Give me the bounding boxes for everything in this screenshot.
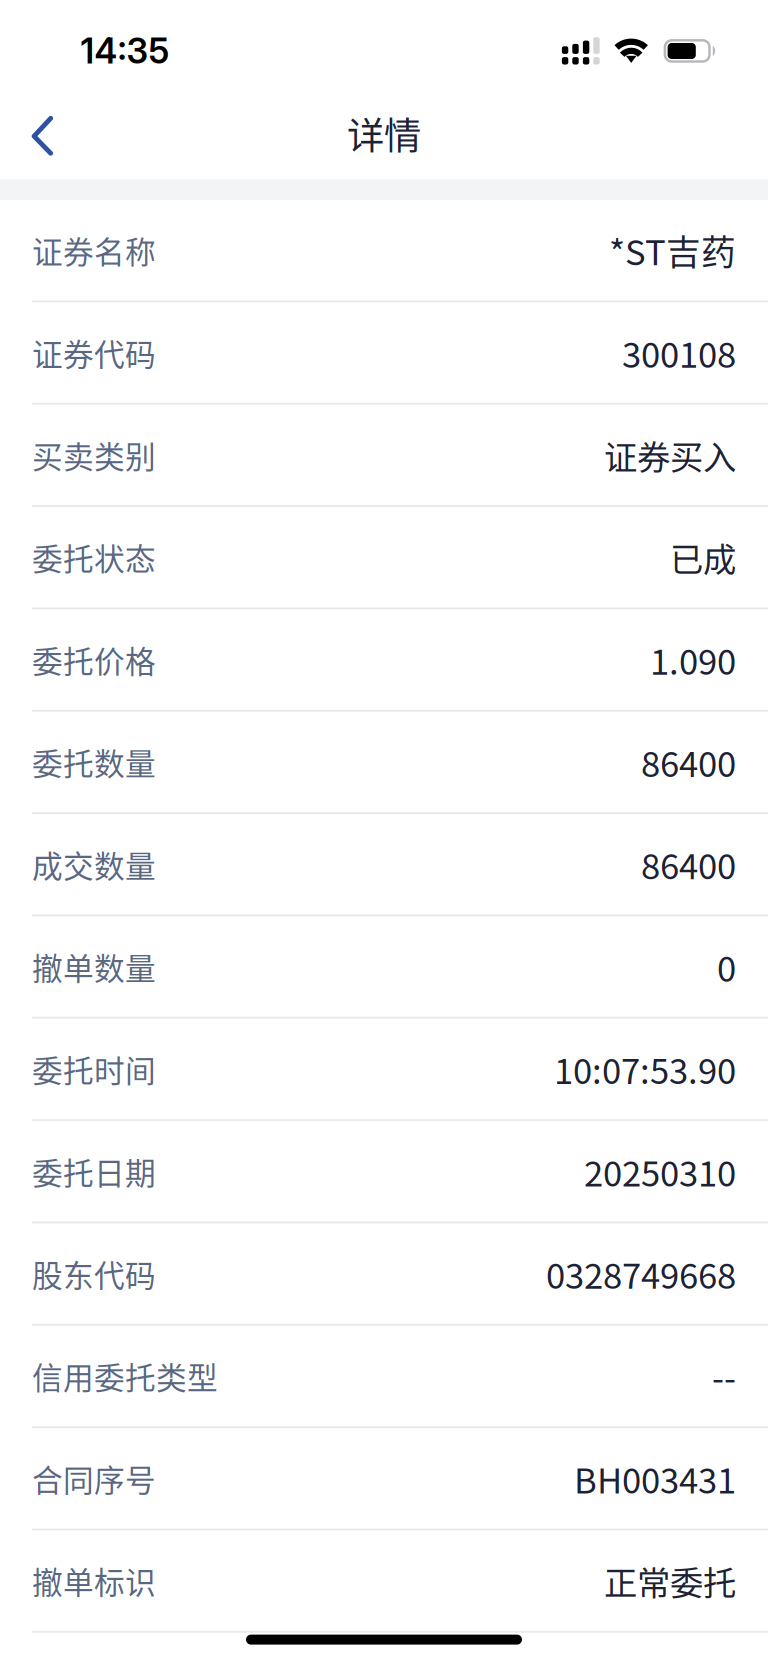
staticText: 合同序号 [32, 1456, 156, 1500]
staticText: 正常委托 [604, 1556, 736, 1605]
staticText: *ST吉药 [609, 225, 736, 275]
staticText: 委托时间 [32, 1047, 156, 1091]
staticText: 已成 [670, 533, 736, 581]
staticText: 0328749668 [546, 1248, 736, 1299]
staticText: 成交数量 [32, 842, 156, 886]
staticText: 委托数量 [32, 740, 156, 784]
staticText: -- [712, 1351, 736, 1401]
staticText: 86400 [641, 839, 736, 889]
staticText: 证券买入 [604, 431, 736, 479]
staticText: 买卖类别 [32, 433, 156, 477]
staticText: 1.090 [650, 634, 736, 685]
staticText: 撤单标识 [32, 1558, 156, 1603]
staticText: 0 [717, 941, 736, 992]
staticText: 委托价格 [32, 637, 156, 682]
staticText: 详情 [347, 106, 421, 160]
staticText: BH003431 [574, 1453, 736, 1503]
staticText: 86400 [641, 737, 736, 787]
staticText: 撤单数量 [32, 944, 156, 989]
staticText: 委托日期 [32, 1149, 156, 1193]
staticText: 14:35 [80, 30, 169, 72]
staticText: 10:07:53.90 [554, 1044, 736, 1094]
staticText: 20250310 [584, 1146, 736, 1196]
staticText: 证券代码 [32, 330, 156, 375]
staticText: 股东代码 [32, 1251, 156, 1296]
staticText: 300108 [622, 327, 736, 378]
staticText: 证券名称 [32, 228, 156, 272]
button[interactable]: Back [11, 105, 73, 167]
staticText: 委托状态 [32, 535, 156, 579]
staticText: 信用委托类型 [32, 1354, 218, 1398]
